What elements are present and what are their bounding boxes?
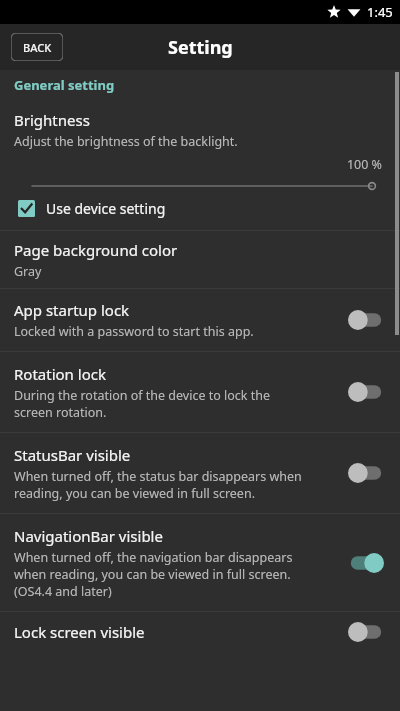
button[interactable]: BACK — [11, 33, 63, 61]
staticText: StatusBar visible — [14, 445, 131, 465]
button[interactable]: NavigationBar visible — [0, 514, 400, 611]
staticText: Brightness — [14, 110, 90, 130]
staticText: Page background color — [14, 240, 178, 260]
staticText: Adjust the brightness of the backlight. — [14, 133, 238, 150]
staticText: Gray — [14, 263, 42, 280]
staticText: BACK — [23, 40, 52, 55]
button[interactable]: Page background color — [0, 231, 400, 288]
staticText: App startup lock — [14, 300, 130, 320]
staticText: 100 % — [0, 156, 382, 173]
button[interactable]: Lock screen visible — [0, 612, 400, 652]
staticText: NavigationBar visible — [14, 526, 163, 546]
button[interactable]: Rotation lock toggle — [346, 379, 386, 405]
staticText: 1:45 — [367, 3, 393, 21]
staticText: Rotation lock — [14, 364, 106, 384]
button[interactable]: Brightness — [0, 100, 400, 230]
staticText: Use device setting — [46, 199, 166, 218]
button[interactable]: StatusBar visible — [0, 433, 400, 513]
staticText: Locked with a password to start this app… — [14, 323, 254, 340]
button[interactable]: Lock screen visible toggle — [346, 619, 386, 645]
staticText: General setting — [14, 76, 115, 94]
button[interactable]: Rotation lock — [0, 352, 400, 432]
staticText: During the rotation of the device to loc… — [14, 387, 271, 421]
staticText: When turned off, the status bar disappea… — [14, 468, 302, 502]
button[interactable]: Use device setting — [18, 199, 400, 218]
button[interactable]: NavigationBar visible toggle — [346, 550, 386, 576]
button[interactable]: App startup lock toggle — [346, 307, 386, 333]
button[interactable]: App startup lock — [0, 289, 400, 351]
staticText: When turned off, the navigation bar disa… — [14, 549, 293, 600]
button[interactable]: StatusBar visible toggle — [346, 460, 386, 486]
staticText: Setting — [168, 35, 233, 60]
staticText: Lock screen visible — [14, 622, 145, 642]
